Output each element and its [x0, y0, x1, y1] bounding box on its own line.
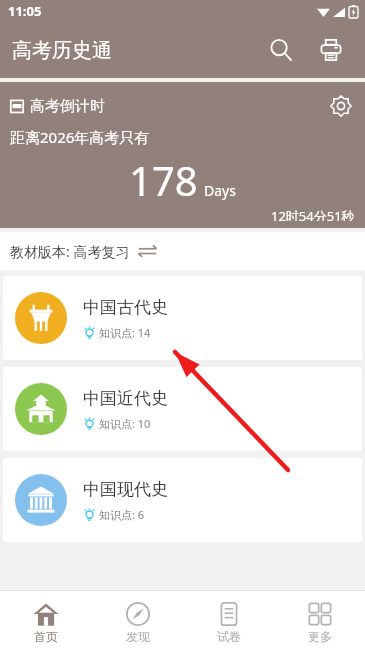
staticText: 11:05 [8, 2, 42, 20]
staticText: 知识点: 10 [99, 416, 151, 431]
staticText: 知识点: 14 [99, 325, 151, 340]
button[interactable]: Search [259, 28, 303, 72]
staticText: 试卷 [217, 629, 241, 644]
button[interactable]: 发现 [92, 591, 183, 653]
button[interactable]: 中国近代史 [3, 367, 362, 451]
staticText: 中国现代史 [83, 479, 168, 500]
staticText: 知识点: 6 [99, 507, 145, 522]
staticText: 中国古代史 [83, 297, 168, 318]
button[interactable]: 教材版本: 高考复习 [0, 232, 365, 270]
button[interactable]: 试卷 [183, 591, 274, 653]
staticText: 教材版本: 高考复习 [10, 242, 130, 261]
button[interactable]: 更多 [274, 591, 365, 653]
staticText: 发现 [126, 629, 150, 644]
button[interactable]: 首页 [0, 591, 92, 653]
staticText: 178 [129, 153, 198, 207]
button[interactable]: 中国古代史 [3, 276, 362, 360]
button[interactable]: 中国现代史 [3, 458, 362, 542]
button[interactable]: Print [309, 28, 353, 72]
staticText: 距离2026年高考只有 [10, 127, 150, 147]
button[interactable]: 高考倒计时 [0, 82, 365, 228]
staticText: Days [204, 181, 236, 200]
staticText: 更多 [308, 629, 332, 644]
staticText: 高考倒计时 [30, 97, 105, 116]
staticText: 高考历史通 [12, 38, 112, 63]
button[interactable]: Settings [327, 92, 355, 120]
staticText: 首页 [34, 629, 58, 644]
staticText: 中国近代史 [83, 388, 168, 409]
staticText: 12时54分51秒 [271, 207, 355, 221]
